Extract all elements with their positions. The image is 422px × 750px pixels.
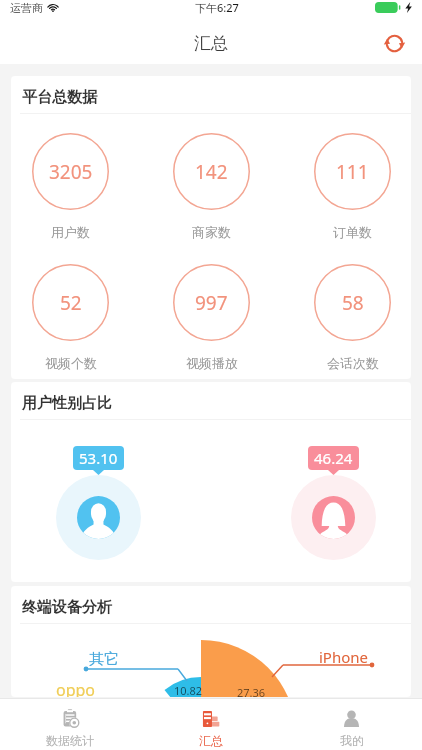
staticText: 我的 bbox=[340, 733, 364, 748]
button[interactable]: 汇总 bbox=[140, 702, 281, 748]
button[interactable]: Refresh bbox=[378, 27, 410, 59]
staticText: oppo bbox=[56, 679, 96, 697]
staticText: 997 bbox=[195, 290, 228, 316]
staticText: 汇总 bbox=[199, 733, 223, 748]
staticText: 用户性别占比 bbox=[22, 394, 112, 413]
staticText: 46.24 bbox=[314, 448, 353, 468]
button[interactable]: 数据统计 bbox=[0, 702, 140, 748]
staticText: 53.10 bbox=[79, 448, 118, 468]
staticText: 27.36 bbox=[237, 685, 266, 697]
staticText: 下午6:27 bbox=[195, 0, 239, 15]
staticText: 10.82 bbox=[174, 683, 203, 697]
staticText: 商家数 bbox=[192, 224, 231, 240]
staticText: 用户数 bbox=[51, 224, 90, 240]
staticText: iPhone bbox=[319, 647, 369, 667]
staticText: 142 bbox=[195, 159, 228, 185]
staticText: 数据统计 bbox=[46, 733, 94, 748]
staticText: 3205 bbox=[49, 159, 93, 185]
staticText: 终端设备分析 bbox=[22, 598, 112, 617]
staticText: 视频播放 bbox=[186, 355, 238, 371]
staticText: 平台总数据 bbox=[22, 88, 97, 107]
staticText: 58 bbox=[342, 290, 364, 316]
staticText: 视频个数 bbox=[45, 355, 97, 371]
staticText: 运营商 bbox=[10, 1, 43, 15]
staticText: 订单数 bbox=[333, 224, 372, 240]
staticText: 111 bbox=[336, 159, 369, 185]
button[interactable]: 我的 bbox=[281, 702, 422, 748]
staticText: 会话次数 bbox=[327, 355, 379, 371]
staticText: 其它 bbox=[89, 650, 119, 669]
staticText: 52 bbox=[60, 290, 82, 316]
staticText: 汇总 bbox=[194, 33, 228, 54]
